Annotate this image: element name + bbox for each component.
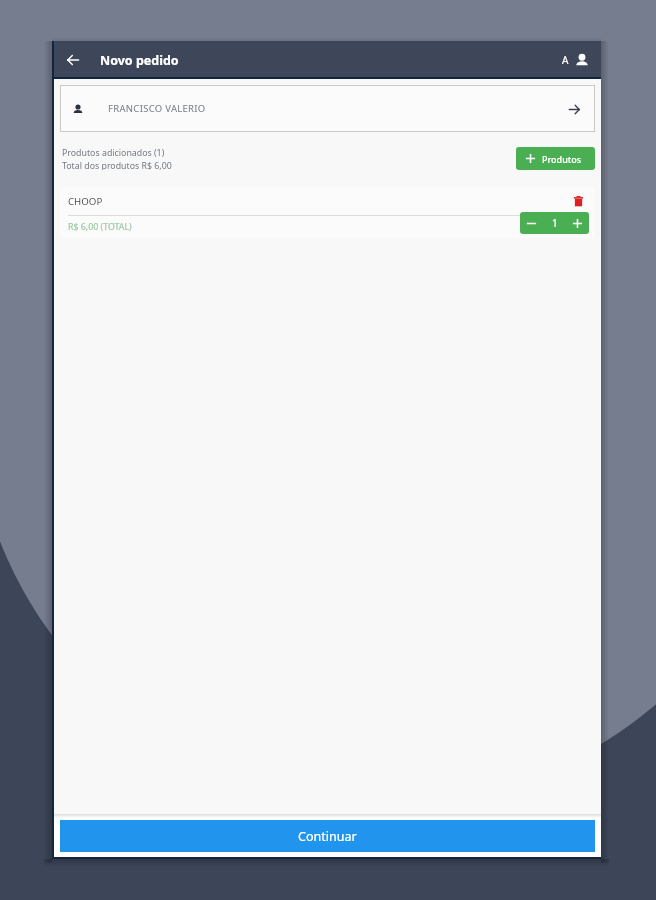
- button[interactable]: Delete: [567, 190, 589, 212]
- staticText: R$ 6,00 (TOTAL): [68, 221, 132, 233]
- staticText: Produtos: [542, 153, 582, 165]
- staticText: Produtos adicionados (1): [62, 147, 165, 159]
- button[interactable]: Produtos: [516, 147, 595, 170]
- button[interactable]: FRANCISCO VALERIO: [60, 85, 595, 132]
- button[interactable]: Increase quantity: [566, 212, 589, 234]
- staticText: FRANCISCO VALERIO: [108, 102, 206, 115]
- staticText: A: [562, 53, 569, 67]
- staticText: Continuar: [298, 828, 357, 845]
- staticText: Total dos produtos R$ 6,00: [62, 160, 172, 170]
- button[interactable]: Back: [57, 44, 89, 76]
- staticText: Novo pedido: [100, 52, 179, 69]
- button[interactable]: Decrease quantity: [520, 212, 543, 234]
- button[interactable]: Select customer: [562, 97, 586, 121]
- button[interactable]: Account: [572, 50, 592, 70]
- button[interactable]: Continuar: [60, 820, 595, 852]
- staticText: 1: [552, 216, 558, 230]
- staticText: CHOOP: [68, 195, 103, 208]
